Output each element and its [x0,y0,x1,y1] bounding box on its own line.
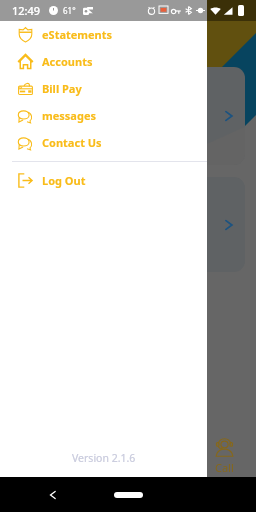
staticText: Contact Us [42,135,102,150]
button[interactable]: Back [44,486,62,504]
button[interactable]: Cards [64,433,128,475]
button[interactable]: Call [192,433,256,475]
staticText: Accounts [42,54,93,69]
staticText: Bill Pay [42,81,82,96]
button[interactable]: Contact Us [0,129,207,156]
button[interactable]: Bill Pay [0,75,207,102]
staticText: messages [42,108,96,123]
button[interactable]: Log Out [0,167,207,194]
staticText: Log Out [42,173,86,188]
button[interactable]: Home [114,492,143,498]
button[interactable] [11,177,245,272]
staticText: 12:49 [12,3,41,18]
button[interactable]: messages [0,102,207,129]
button[interactable]: Find Us [128,433,192,475]
button[interactable]: eStatements [0,21,207,48]
staticText: Call [215,460,234,475]
button[interactable] [11,67,245,165]
staticText: Cards [81,460,111,475]
button[interactable]: Accounts [0,48,207,75]
staticText: Version 2.1.6 [72,451,136,465]
staticText: eStatements [42,27,113,42]
staticText: 61° [63,5,76,16]
